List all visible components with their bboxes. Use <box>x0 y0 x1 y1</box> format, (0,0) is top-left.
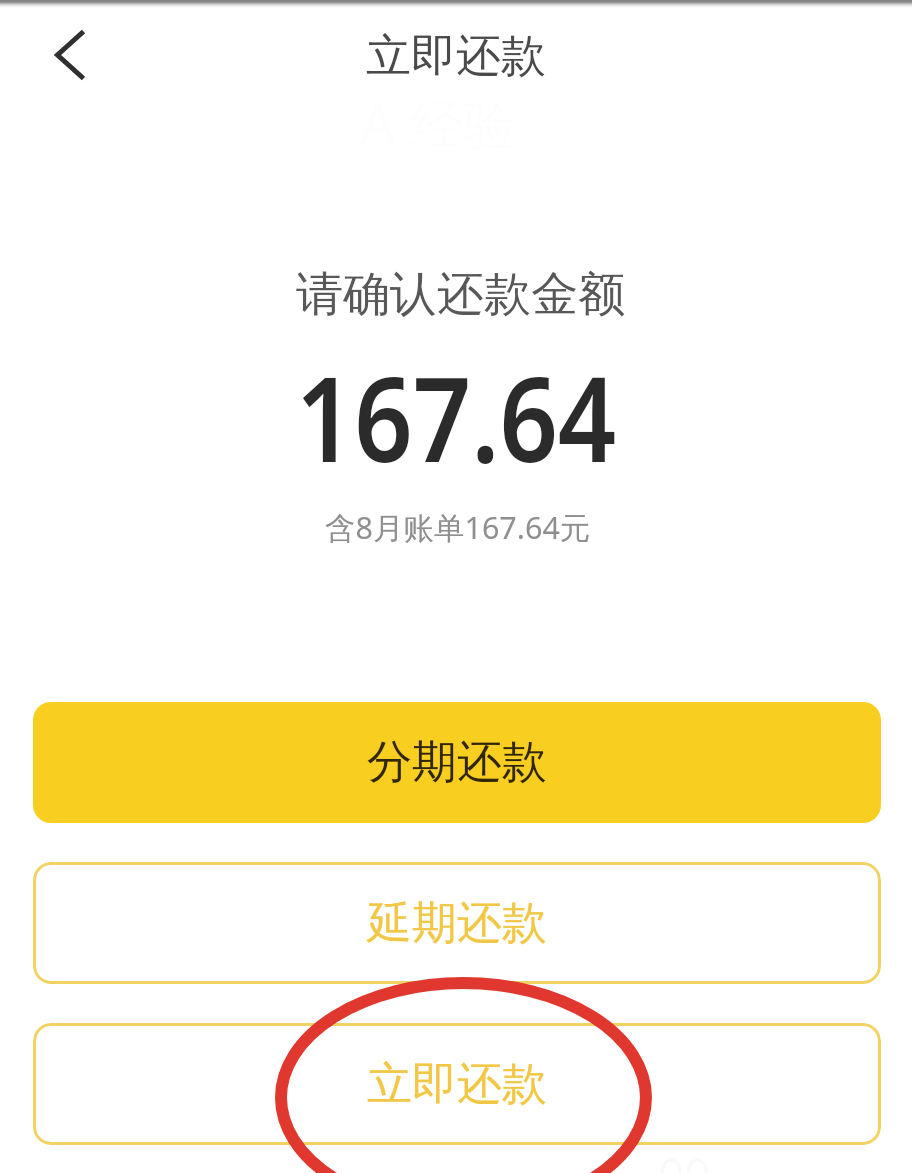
staticText: 分期还款 <box>367 734 547 791</box>
staticText: 167.64 <box>296 336 617 497</box>
staticText: 00 <box>658 1143 711 1173</box>
button[interactable]: Back <box>33 18 107 92</box>
staticText: 立即还款 <box>367 1056 547 1113</box>
button[interactable]: 立即还款 <box>33 1023 881 1145</box>
staticText: 请确认还款金额 <box>296 265 625 324</box>
staticText: 含8月账单167.64元 <box>325 506 591 548</box>
button[interactable]: 分期还款 <box>33 702 881 823</box>
staticText: 立即还款 <box>366 28 546 85</box>
staticText: 延期还款 <box>367 895 547 952</box>
button[interactable]: 延期还款 <box>33 862 881 984</box>
